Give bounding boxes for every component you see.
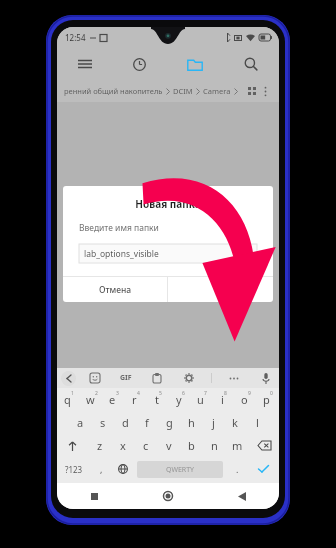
- button[interactable]: Clipboard: [150, 371, 164, 385]
- staticText: Camera: [203, 86, 231, 96]
- button[interactable]: .: [226, 457, 248, 481]
- button[interactable]: Change language: [112, 457, 134, 481]
- button[interactable]: QWERTY: [137, 461, 223, 478]
- button[interactable]: Back: [205, 483, 279, 509]
- staticText: 7: [204, 390, 207, 397]
- staticText: .: [236, 463, 239, 475]
- staticText: u: [197, 392, 204, 407]
- button[interactable]: o: [235, 388, 257, 411]
- button[interactable]: g: [158, 411, 180, 434]
- button[interactable]: m: [226, 434, 249, 457]
- button[interactable]: Отмена: [63, 277, 167, 302]
- button[interactable]: Recent: [112, 48, 167, 80]
- button[interactable]: v: [157, 434, 180, 457]
- button[interactable]: i: [213, 388, 235, 411]
- staticText: 2: [95, 390, 98, 397]
- button[interactable]: s: [92, 411, 114, 434]
- button[interactable]: Home: [131, 483, 205, 509]
- button[interactable]: r: [125, 388, 147, 411]
- button[interactable]: Emoji: [88, 371, 102, 385]
- staticText: 6: [182, 390, 185, 397]
- staticText: q: [64, 392, 71, 407]
- button[interactable]: t: [147, 388, 169, 411]
- staticText: 4: [137, 390, 140, 397]
- staticText: l: [256, 415, 259, 430]
- staticText: m: [232, 438, 243, 453]
- button[interactable]: Recents: [57, 483, 131, 509]
- staticText: 3: [116, 390, 119, 397]
- button[interactable]: e: [103, 388, 125, 411]
- staticText: h: [188, 415, 195, 430]
- button[interactable]: j: [202, 411, 224, 434]
- staticText: ?123: [65, 464, 83, 475]
- staticText: 8: [224, 390, 227, 397]
- button[interactable]: a: [69, 411, 92, 434]
- staticText: lab_options_visible: [84, 248, 159, 260]
- staticText: 0: [270, 390, 273, 397]
- staticText: y: [176, 392, 182, 407]
- button[interactable]: y: [169, 388, 191, 411]
- button[interactable]: ,: [90, 457, 112, 481]
- staticText: p: [263, 392, 270, 407]
- button[interactable]: ?123: [57, 457, 90, 481]
- staticText: i: [221, 392, 224, 407]
- button[interactable]: More: [227, 371, 241, 385]
- button[interactable]: More options: [259, 84, 272, 98]
- button[interactable]: u: [191, 388, 213, 411]
- staticText: GIF: [120, 373, 132, 383]
- staticText: k: [232, 415, 238, 430]
- staticText: Новая папка: [63, 197, 273, 211]
- staticText: s: [100, 415, 106, 430]
- staticText: Отмена: [99, 284, 132, 296]
- button[interactable]: lab_options_visible: [79, 244, 257, 263]
- button[interactable]: q: [57, 388, 80, 411]
- staticText: Введите имя папки: [79, 222, 159, 234]
- staticText: x: [120, 438, 126, 453]
- staticText: t: [155, 392, 159, 407]
- staticText: c: [143, 438, 149, 453]
- button[interactable]: OK: [168, 277, 273, 302]
- button[interactable]: Done: [248, 457, 279, 481]
- staticText: w: [86, 392, 95, 407]
- staticText: OK: [214, 284, 227, 296]
- button[interactable]: x: [111, 434, 134, 457]
- button[interactable]: Shift: [57, 434, 88, 457]
- button[interactable]: w: [80, 388, 103, 411]
- staticText: o: [241, 392, 248, 407]
- button[interactable]: d: [114, 411, 136, 434]
- staticText: f: [145, 415, 149, 430]
- staticText: j: [212, 415, 215, 430]
- button[interactable]: Back: [61, 371, 76, 386]
- staticText: v: [166, 438, 172, 453]
- button[interactable]: z: [88, 434, 111, 457]
- button[interactable]: Settings: [182, 371, 196, 385]
- button[interactable]: f: [136, 411, 158, 434]
- button[interactable]: p: [257, 388, 279, 411]
- staticText: r: [132, 392, 137, 407]
- staticText: 1: [71, 390, 74, 397]
- button[interactable]: c: [134, 434, 157, 457]
- staticText: QWERTY: [166, 465, 195, 475]
- button[interactable]: Search: [223, 48, 279, 80]
- staticText: e: [109, 392, 116, 407]
- button[interactable]: GIF: [120, 373, 132, 383]
- button[interactable]: n: [203, 434, 226, 457]
- staticText: b: [188, 438, 195, 453]
- button[interactable]: Voice input: [259, 371, 273, 385]
- button[interactable]: Menu: [57, 48, 112, 80]
- button[interactable]: l: [246, 411, 268, 434]
- staticText: ,: [100, 463, 103, 475]
- button[interactable]: Grid view: [245, 84, 259, 98]
- staticText: 5: [159, 390, 162, 397]
- button[interactable]: b: [180, 434, 203, 457]
- staticText: ренний общий накопитель: [64, 86, 163, 96]
- button[interactable]: Backspace: [249, 434, 279, 457]
- staticText: z: [97, 438, 103, 453]
- staticText: 12:54: [65, 32, 86, 43]
- staticText: 9: [248, 390, 251, 397]
- staticText: d: [122, 415, 129, 430]
- button[interactable]: k: [224, 411, 246, 434]
- staticText: a: [77, 415, 84, 430]
- button[interactable]: h: [180, 411, 202, 434]
- button[interactable]: Folder: [167, 48, 223, 80]
